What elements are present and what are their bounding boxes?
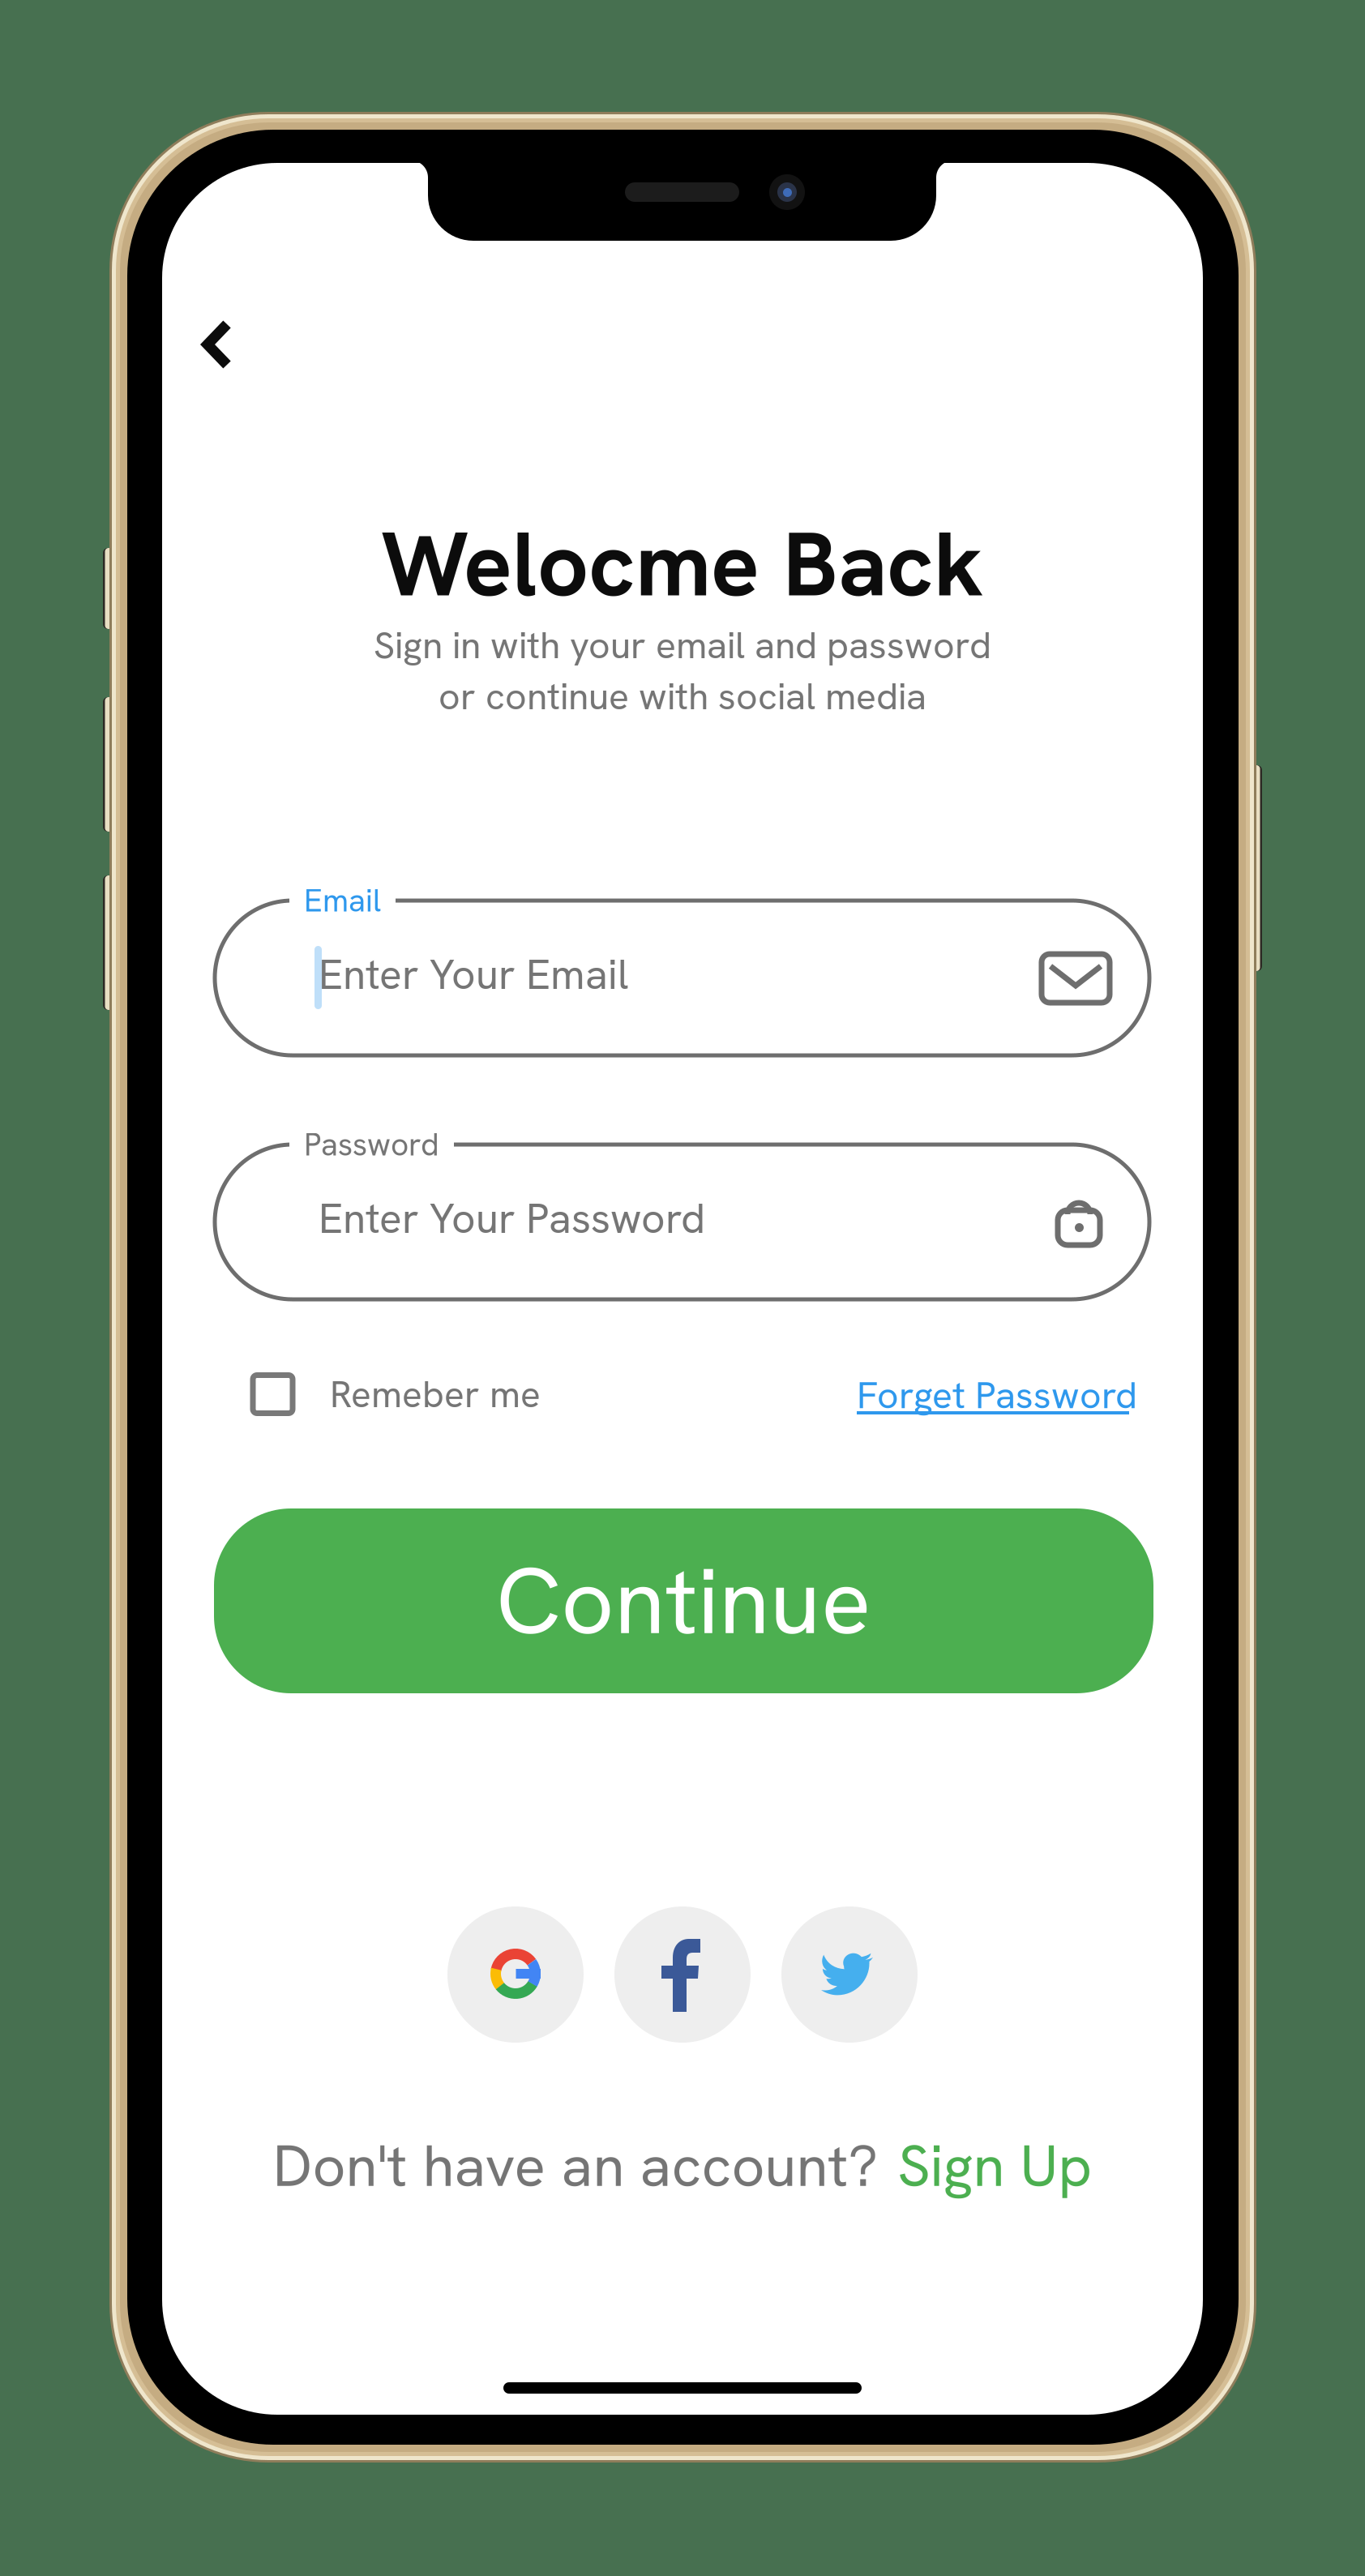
staticText: Continue (496, 1541, 871, 1661)
staticText: Welocme Back (381, 506, 984, 623)
button[interactable]: Sign Up (898, 2128, 1092, 2203)
staticText: Password (304, 1124, 439, 1165)
button[interactable]: Sign in with Twitter (781, 1906, 918, 2043)
staticText: Forget Password (857, 1371, 1137, 1419)
button[interactable]: Forget Password (857, 1371, 1129, 1416)
staticText: or continue with social media (439, 672, 926, 721)
button[interactable]: Remeber me (253, 1366, 541, 1423)
staticText: Sign Up (898, 2128, 1092, 2203)
staticText: Enter Your Email (319, 947, 629, 1001)
button[interactable]: Sign in with Google (447, 1906, 584, 2043)
staticText: Enter Your Password (319, 1191, 705, 1245)
button[interactable]: Sign in with Facebook (614, 1906, 751, 2043)
staticText: Don't have an account? (273, 2128, 878, 2203)
button[interactable]: Continue (214, 1508, 1153, 1693)
staticText: Sign in with your email and password (374, 621, 991, 670)
staticText: Email (304, 880, 381, 921)
button[interactable]: Back (178, 306, 256, 383)
staticText: Remeber me (330, 1370, 541, 1418)
